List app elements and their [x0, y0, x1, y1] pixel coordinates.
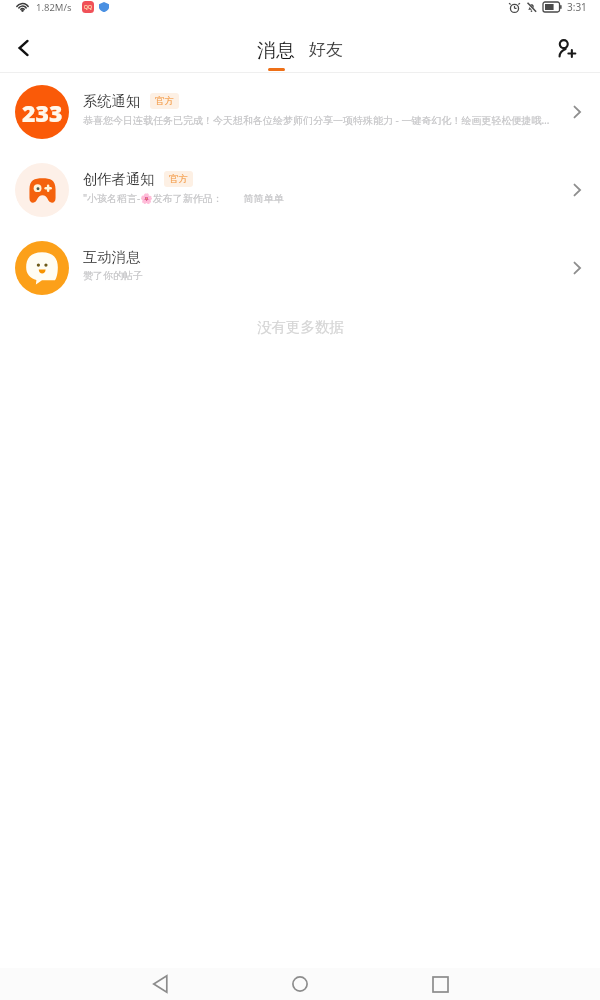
staticText: 创作者通知 — [83, 170, 155, 188]
staticText: 官方 — [155, 95, 174, 107]
staticText: 233 — [22, 97, 63, 128]
staticText: 互动消息 — [83, 248, 141, 266]
button[interactable]: Back — [4, 28, 44, 68]
button[interactable]: Home — [282, 968, 318, 1000]
staticText: 好友 — [309, 39, 343, 60]
staticText: QQ — [84, 4, 92, 11]
staticText: "小孩名稻言-🌸发布了新作品： 简简单单 — [83, 191, 284, 205]
button[interactable]: 233 — [0, 73, 600, 151]
staticText: 没有更多数据 — [257, 318, 344, 336]
staticText: 3:31 — [567, 0, 587, 14]
button[interactable]: 好友 — [304, 39, 348, 60]
button[interactable]: 创作者通知 — [0, 151, 600, 229]
button[interactable]: 互动消息 — [0, 229, 600, 307]
button[interactable]: 消息 — [252, 39, 300, 71]
button[interactable]: Add friend — [546, 28, 586, 68]
staticText: 1.82M/s — [36, 1, 72, 14]
staticText: 消息 — [257, 39, 295, 63]
button[interactable]: Back — [142, 968, 178, 1000]
staticText: 恭喜您今日连载任务已完成！今天想和各位绘梦师们分享一项特殊能力 - 一键奇幻化！… — [83, 113, 550, 127]
staticText: 系统通知 — [83, 92, 141, 110]
staticText: 官方 — [169, 173, 188, 185]
button[interactable]: Recents — [422, 968, 458, 1000]
staticText: 赞了你的帖子 — [83, 269, 143, 282]
